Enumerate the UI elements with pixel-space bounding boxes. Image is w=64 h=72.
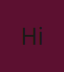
staticText: Hi	[20, 21, 43, 51]
